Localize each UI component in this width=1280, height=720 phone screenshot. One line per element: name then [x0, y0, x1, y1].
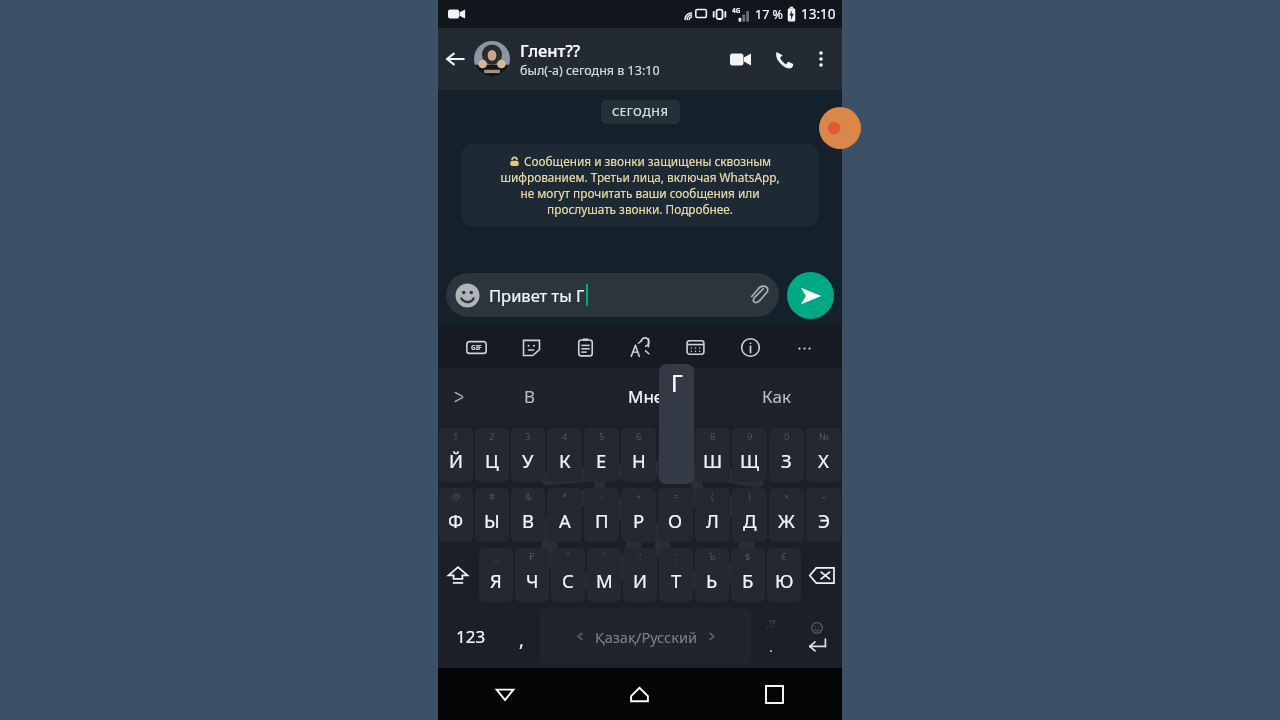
button[interactable]: Recents [707, 668, 842, 720]
staticText: У [522, 448, 534, 473]
button[interactable]: 5 [584, 428, 619, 482]
button[interactable]: = [658, 488, 693, 542]
staticText: : [639, 550, 642, 563]
staticText: Ф [448, 508, 464, 533]
button[interactable]: ₽ [515, 548, 549, 602]
button[interactable]: + [621, 488, 656, 542]
staticText: Щ [740, 448, 759, 473]
button[interactable]: Back [438, 668, 572, 720]
button[interactable]: 9 [732, 428, 767, 482]
button[interactable]: ; [659, 548, 693, 602]
staticText: " [566, 550, 570, 563]
staticText: В [522, 508, 535, 533]
button[interactable]: Video call [722, 41, 758, 77]
staticText: Е [596, 448, 607, 473]
staticText: Ч [526, 568, 539, 593]
staticText: СЕГОДНЯ [612, 104, 669, 120]
staticText: 1 [453, 430, 459, 443]
button[interactable]: _ [479, 548, 513, 602]
button[interactable]: & [511, 488, 545, 542]
staticText: А [559, 508, 571, 533]
staticText: = [673, 490, 679, 503]
button[interactable]: More options [804, 42, 838, 76]
button[interactable]: Back [438, 42, 472, 76]
button[interactable]: 0 [769, 428, 804, 482]
button[interactable]: В [480, 368, 580, 425]
staticText: 6 [636, 430, 642, 443]
button[interactable]: Stickers [514, 330, 548, 364]
button[interactable]: ' [587, 548, 621, 602]
staticText: И [633, 568, 647, 593]
staticText: Й [449, 448, 463, 473]
button[interactable]: ÷ [806, 488, 841, 542]
button[interactable]: Қазақ/Русский [540, 609, 751, 664]
staticText: ÷ [821, 490, 827, 503]
button[interactable]: Voice call [766, 41, 802, 77]
button[interactable]: № [806, 428, 841, 482]
button[interactable]: ( [695, 488, 730, 542]
button[interactable]: Backspace [802, 548, 842, 602]
button[interactable]: 4 [547, 428, 582, 482]
button[interactable]: Home [572, 668, 707, 720]
staticText: Мне [628, 385, 664, 408]
staticText: ,!? [767, 618, 776, 630]
button[interactable]: Мне [580, 368, 711, 425]
staticText: К [559, 448, 571, 473]
button[interactable]: Shift [438, 548, 478, 602]
button[interactable]: Clipboard [568, 330, 602, 364]
button[interactable]: ) [732, 488, 767, 542]
button[interactable]: 2 [475, 428, 509, 482]
staticText: Привет ты Г [489, 284, 585, 306]
staticText: О [668, 508, 683, 533]
staticText: 0 [784, 430, 790, 443]
button[interactable]: 8 [695, 428, 730, 482]
staticText: ' [603, 550, 606, 563]
button[interactable]: 3 [511, 428, 545, 482]
button[interactable]: - [584, 488, 619, 542]
staticText: З [781, 448, 792, 473]
staticText: В [524, 385, 536, 408]
button[interactable]: Emoji [446, 273, 779, 317]
button[interactable]: Attach [746, 283, 770, 307]
button[interactable]: Emoji [455, 283, 480, 308]
staticText: Н [632, 448, 646, 473]
button[interactable]: * [547, 488, 582, 542]
staticText: Р [633, 508, 645, 533]
button[interactable]: Translate [623, 330, 657, 364]
button[interactable]: # [475, 488, 509, 542]
staticText: & [525, 490, 532, 503]
button[interactable]: : [623, 548, 657, 602]
staticText: 2 [489, 430, 495, 443]
button[interactable]: Сообщения и звонки защищены сквозным [462, 144, 818, 226]
button[interactable]: Expand suggestions [438, 368, 480, 425]
button[interactable]: 7 [658, 428, 693, 482]
button[interactable]: Keypad [678, 330, 712, 364]
button[interactable]: Contact photo [474, 41, 510, 77]
button[interactable]: Send [787, 272, 834, 319]
button[interactable]: 6 [621, 428, 656, 482]
staticText: . [769, 636, 774, 656]
button[interactable]: 123 [438, 609, 503, 664]
staticText: - [600, 490, 604, 503]
button[interactable]: $ [731, 548, 765, 602]
button[interactable]: СЕГОДНЯ [601, 100, 680, 124]
button[interactable]: Info [733, 330, 767, 364]
button[interactable]: Enter [792, 609, 842, 664]
button[interactable]: Как [711, 368, 842, 425]
button[interactable]: @ [439, 488, 473, 542]
button[interactable]: Comma [503, 609, 540, 664]
staticText: 8 [710, 430, 716, 443]
button[interactable]: GIF [459, 330, 493, 364]
button[interactable]: 1 [439, 428, 473, 482]
button[interactable]: Period [751, 609, 792, 664]
staticText: прослушать звонки. Подробнее. [547, 201, 733, 217]
staticText: Ю [775, 568, 794, 593]
button[interactable]: Ъ [695, 548, 729, 602]
button[interactable]: € [767, 548, 801, 602]
button[interactable]: More [787, 330, 821, 364]
button[interactable]: × [769, 488, 804, 542]
staticText: , [519, 628, 524, 653]
staticText: С [562, 568, 574, 593]
button[interactable]: " [551, 548, 585, 602]
